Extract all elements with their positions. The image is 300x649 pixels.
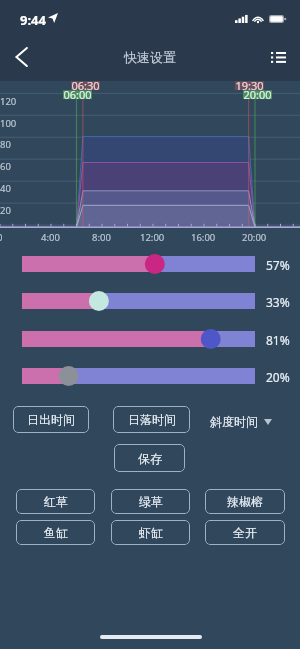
staticText: 辣椒榕 bbox=[227, 494, 263, 509]
staticText: 鱼缸 bbox=[44, 525, 68, 540]
button[interactable]: 鱼缸 bbox=[16, 520, 95, 545]
button[interactable]: 红草 bbox=[16, 489, 95, 514]
button[interactable]: 日出时间 bbox=[13, 406, 89, 433]
staticText: 16:00 bbox=[191, 231, 216, 244]
staticText: 虾缸 bbox=[139, 525, 163, 540]
staticText: 81% bbox=[266, 332, 290, 348]
staticText: 9:44 bbox=[20, 11, 46, 29]
button[interactable]: 绿草 bbox=[111, 489, 190, 514]
button[interactable] bbox=[22, 368, 255, 384]
button[interactable]: 斜度时间 bbox=[206, 410, 276, 433]
button[interactable] bbox=[22, 331, 255, 347]
staticText: 保存 bbox=[138, 451, 162, 466]
staticText: 日出时间 bbox=[27, 412, 75, 427]
staticText: 0 bbox=[0, 231, 3, 244]
button[interactable]: Back bbox=[6, 41, 38, 73]
button[interactable]: 保存 bbox=[114, 444, 185, 472]
staticText: 4:00 bbox=[41, 231, 60, 244]
staticText: 60 bbox=[0, 160, 11, 173]
staticText: 20 bbox=[0, 204, 11, 217]
button[interactable]: List bbox=[262, 41, 294, 73]
staticText: 80 bbox=[0, 138, 11, 151]
staticText: 33% bbox=[266, 294, 290, 310]
staticText: 斜度时间 bbox=[210, 414, 258, 429]
button[interactable] bbox=[22, 256, 255, 272]
button[interactable] bbox=[22, 293, 255, 309]
staticText: 120 bbox=[0, 95, 17, 108]
staticText: 19:30 bbox=[235, 78, 264, 93]
staticText: 20% bbox=[266, 369, 290, 385]
staticText: 全开 bbox=[233, 525, 257, 540]
staticText: 绿草 bbox=[139, 494, 163, 509]
staticText: 57% bbox=[266, 257, 290, 273]
staticText: 快速设置 bbox=[124, 49, 176, 65]
button[interactable]: 全开 bbox=[205, 520, 285, 545]
button[interactable]: 辣椒榕 bbox=[205, 489, 285, 514]
staticText: 20:00 bbox=[242, 231, 267, 244]
staticText: 20:00 bbox=[243, 87, 272, 102]
staticText: 06:30 bbox=[71, 78, 100, 93]
staticText: 100 bbox=[0, 117, 17, 130]
button[interactable]: 虾缸 bbox=[111, 520, 190, 545]
staticText: 红草 bbox=[44, 494, 68, 509]
staticText: 日落时间 bbox=[128, 412, 176, 427]
button[interactable]: 日落时间 bbox=[113, 406, 190, 433]
staticText: 06:00 bbox=[63, 87, 92, 102]
staticText: 40 bbox=[0, 182, 11, 195]
staticText: 8:00 bbox=[92, 231, 111, 244]
staticText: 12:00 bbox=[140, 231, 165, 244]
